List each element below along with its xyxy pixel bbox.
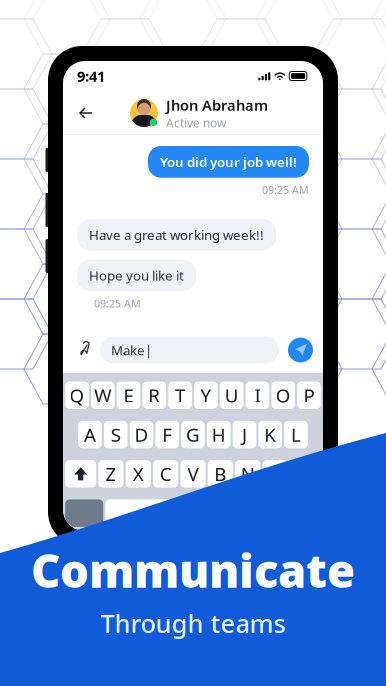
staticText: Have a great working week!! (89, 226, 264, 244)
staticText: P (303, 383, 314, 408)
staticText: Y (200, 383, 211, 408)
staticText: A (84, 422, 96, 447)
staticText: Z (105, 461, 116, 486)
staticText: E (124, 383, 134, 408)
staticText: K (264, 422, 276, 447)
staticText: B (214, 461, 226, 486)
staticText: U (225, 383, 239, 408)
staticText: Through teams (100, 606, 285, 640)
staticText: Active now (166, 115, 226, 131)
staticText: 09:25 AM (94, 296, 141, 310)
staticText: I (254, 383, 260, 408)
staticText: Q (69, 383, 84, 408)
staticText: R (148, 383, 160, 408)
staticText: W (94, 383, 111, 408)
staticText: O (276, 383, 291, 408)
button[interactable]: Back (71, 96, 101, 130)
staticText: F (162, 422, 172, 447)
staticText: D (134, 422, 148, 447)
staticText: Communicate (31, 540, 355, 600)
staticText: Hope you like it (89, 267, 184, 284)
staticText: M (267, 461, 284, 486)
button[interactable]: Send (288, 337, 313, 362)
staticText: J (242, 422, 247, 447)
staticText: V (187, 461, 198, 486)
staticText: G (186, 422, 200, 447)
staticText: S (111, 422, 121, 447)
staticText: 09:25 AM (262, 183, 309, 197)
staticText: C (160, 461, 172, 486)
staticText: H (212, 422, 226, 447)
staticText: L (291, 422, 301, 447)
button[interactable]: Attach file (73, 336, 95, 364)
staticText: Jhon Abraham (166, 95, 268, 115)
staticText: N (241, 461, 255, 486)
staticText: T (175, 383, 185, 408)
staticText: You did your job well! (160, 153, 297, 171)
staticText: X (133, 461, 144, 486)
staticText: 9:41 (77, 66, 105, 86)
staticText: Make| (111, 341, 152, 359)
